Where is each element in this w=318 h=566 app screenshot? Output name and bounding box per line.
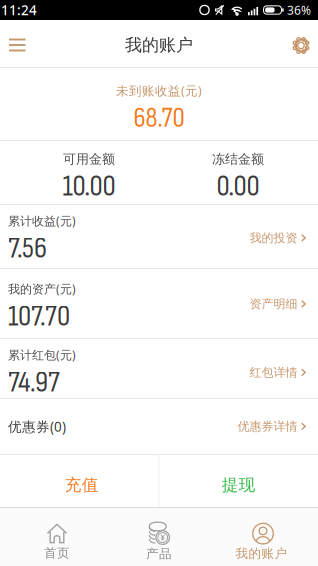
staticText: 累计收益(元) [8, 213, 76, 229]
staticText: 优惠券(0) [8, 417, 66, 436]
staticText: 我的投资 [249, 230, 297, 245]
button[interactable]: 累计红包(元) [0, 339, 318, 398]
button[interactable]: 我的账户 [212, 509, 318, 565]
staticText: 74.97 [8, 365, 60, 400]
staticText: 充值 [65, 475, 99, 495]
staticText: 11:24 [1, 1, 37, 19]
staticText: 我的资产(元) [8, 281, 76, 297]
button[interactable]: 累计收益(元) [0, 205, 318, 268]
staticText: 产品 [146, 546, 172, 562]
staticText: 107.70 [8, 299, 70, 334]
button[interactable]: 未到账收益(元) [0, 68, 318, 140]
staticText: 提现 [222, 475, 256, 495]
staticText: 可用金额 [63, 151, 115, 167]
button[interactable]: 产品 [106, 508, 212, 566]
button[interactable]: 首页 [0, 509, 106, 565]
staticText: 未到账收益(元) [116, 82, 202, 99]
staticText: 36% [287, 2, 311, 18]
staticText: 红包详情 [249, 365, 297, 380]
staticText: 首页 [44, 545, 70, 561]
staticText: 我的账户 [125, 34, 193, 56]
staticText: 我的账户 [235, 546, 287, 561]
button[interactable]: Menu [0, 23, 25, 64]
staticText: 0.00 [216, 169, 259, 204]
staticText: 资产明细 [249, 296, 297, 311]
staticText: 10.00 [62, 169, 115, 204]
staticText: 68.70 [133, 102, 184, 135]
staticText: 7.56 [8, 231, 47, 266]
staticText: 累计红包(元) [8, 347, 76, 363]
staticText: 冻结金额 [212, 151, 264, 167]
button[interactable]: 提现 [159, 455, 318, 507]
button[interactable]: Settings [292, 21, 318, 66]
button[interactable]: 优惠券(0) [0, 399, 318, 454]
button[interactable]: 我的资产(元) [0, 269, 318, 338]
button[interactable]: 充值 [0, 455, 158, 507]
staticText: 优惠券详情 [237, 419, 297, 434]
